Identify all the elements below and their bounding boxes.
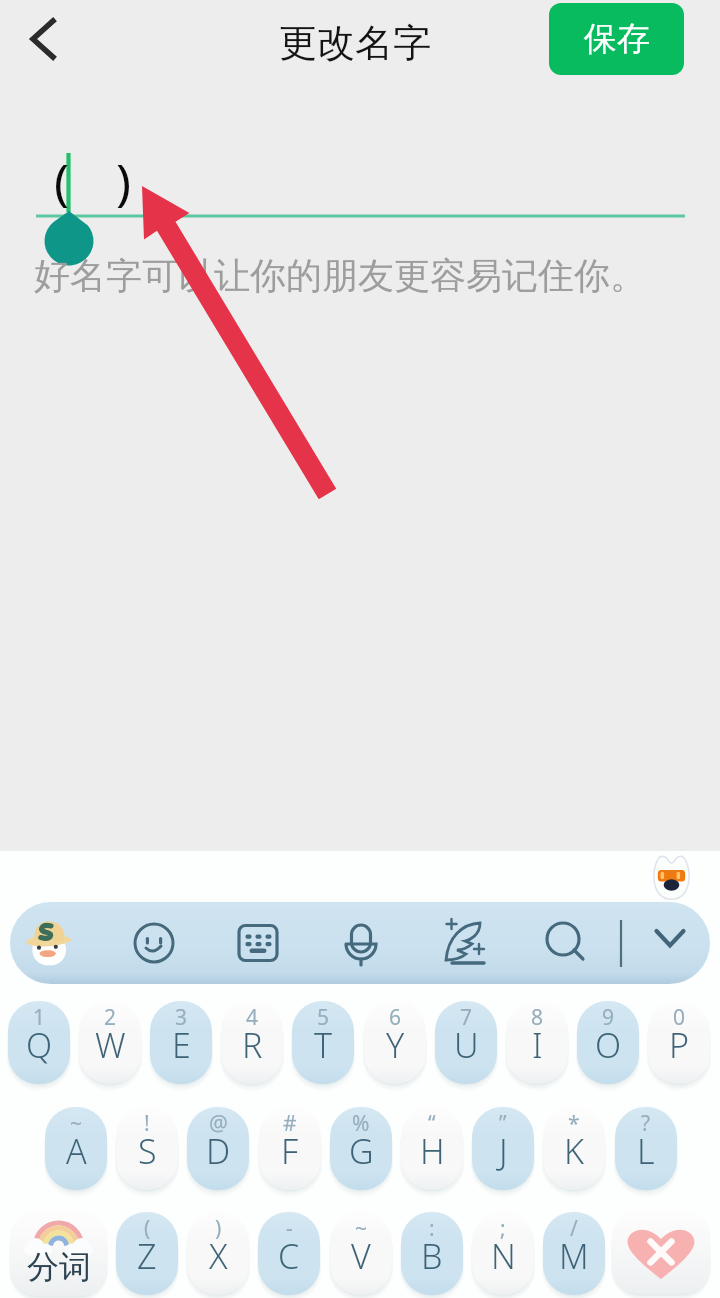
button[interactable]: 8 (506, 1001, 568, 1084)
staticText: G (349, 1128, 374, 1174)
staticText: B (421, 1233, 443, 1279)
button[interactable]: * (543, 1107, 605, 1190)
staticText: N (491, 1233, 516, 1279)
staticText: 2 (104, 1003, 117, 1032)
staticText: @ (209, 1109, 228, 1138)
staticText: ~ (70, 1109, 83, 1138)
staticText: T (314, 1022, 333, 1068)
staticText: W (95, 1022, 126, 1068)
staticText: Z (137, 1233, 157, 1279)
button[interactable]: ( (116, 1212, 178, 1295)
staticText: - (286, 1214, 293, 1243)
button[interactable]: ” (472, 1107, 534, 1190)
staticText: ) (215, 1214, 222, 1243)
staticText: 好名字可以让你的朋友更容易记住你。 (34, 253, 646, 298)
button[interactable]: ) (187, 1212, 249, 1295)
staticText: ; (500, 1214, 506, 1243)
button[interactable]: 9 (577, 1001, 639, 1084)
button[interactable]: Input method (18, 912, 78, 970)
button[interactable]: 1 (8, 1001, 70, 1084)
button[interactable]: ! (116, 1107, 178, 1190)
staticText: % (352, 1109, 370, 1138)
staticText: ” (499, 1109, 507, 1138)
staticText: 5 (317, 1003, 330, 1032)
button[interactable]: 5 (292, 1001, 354, 1084)
staticText: 6 (389, 1003, 402, 1032)
button[interactable]: - (258, 1212, 320, 1295)
staticText: 8 (531, 1003, 544, 1032)
staticText: E (172, 1022, 191, 1068)
button[interactable]: ~ (330, 1212, 392, 1295)
staticText: 分词 (27, 1247, 91, 1287)
staticText: F (281, 1128, 299, 1174)
staticText: M (559, 1233, 589, 1279)
staticText: A (66, 1128, 87, 1174)
staticText: * (568, 1109, 580, 1138)
staticText: ! (144, 1109, 150, 1138)
staticText: X (209, 1233, 228, 1279)
staticText: 9 (602, 1003, 615, 1032)
staticText: H (420, 1128, 445, 1174)
staticText: 4 (246, 1003, 259, 1032)
staticText: I (532, 1022, 543, 1068)
staticText: D (206, 1128, 231, 1174)
staticText: Q (26, 1022, 53, 1068)
button[interactable]: 3 (150, 1001, 212, 1084)
staticText: Y (386, 1022, 405, 1068)
staticText: 1 (33, 1003, 46, 1032)
button[interactable]: Back (4, 0, 82, 78)
button[interactable]: 2 (79, 1001, 141, 1084)
button[interactable]: % (330, 1107, 392, 1190)
staticText: S (138, 1128, 157, 1174)
staticText: 7 (460, 1003, 473, 1032)
staticText: : (429, 1214, 435, 1243)
staticText: ( (54, 147, 69, 215)
staticText: O (595, 1022, 622, 1068)
staticText: V (351, 1233, 371, 1279)
staticText: 0 (673, 1003, 686, 1032)
staticText: ~ (355, 1214, 368, 1243)
button[interactable]: ~ (45, 1107, 107, 1190)
button[interactable]: Assistant (652, 855, 691, 899)
button[interactable]: 分词 (10, 1212, 107, 1296)
staticText: R (242, 1022, 263, 1068)
staticText: K (564, 1128, 584, 1174)
staticText: # (283, 1109, 297, 1138)
button[interactable]: 7 (435, 1001, 497, 1084)
staticText: 3 (175, 1003, 188, 1032)
staticText: L (637, 1128, 655, 1174)
button[interactable]: 0 (648, 1001, 710, 1084)
button[interactable]: : (401, 1212, 463, 1295)
button[interactable]: Handwriting (434, 913, 494, 973)
button[interactable]: @ (187, 1107, 249, 1190)
button[interactable]: Hide keyboard (640, 908, 700, 968)
button[interactable]: 保存 (549, 3, 684, 75)
staticText: J (499, 1128, 508, 1174)
button[interactable]: Delete (612, 1210, 710, 1294)
button[interactable]: 4 (221, 1001, 283, 1084)
staticText: ) (116, 147, 131, 215)
button[interactable]: ? (615, 1107, 677, 1190)
button[interactable]: Emoji (124, 913, 184, 973)
button[interactable]: Keyboard (228, 913, 288, 973)
button[interactable]: # (259, 1107, 321, 1190)
button[interactable]: / (543, 1212, 605, 1295)
staticText: P (669, 1022, 690, 1068)
button[interactable]: 6 (364, 1001, 426, 1084)
staticText: C (278, 1233, 300, 1279)
staticText: U (454, 1022, 479, 1068)
button[interactable]: Voice input (331, 913, 391, 973)
staticText: ( (144, 1214, 151, 1243)
staticText: 保存 (584, 18, 650, 60)
button[interactable]: “ (401, 1107, 463, 1190)
button[interactable]: Search (535, 913, 595, 973)
staticText: 更改名字 (279, 19, 431, 67)
button[interactable]: ; (472, 1212, 534, 1295)
staticText: “ (428, 1109, 436, 1138)
staticText: / (570, 1214, 578, 1243)
staticText: ? (641, 1109, 651, 1138)
